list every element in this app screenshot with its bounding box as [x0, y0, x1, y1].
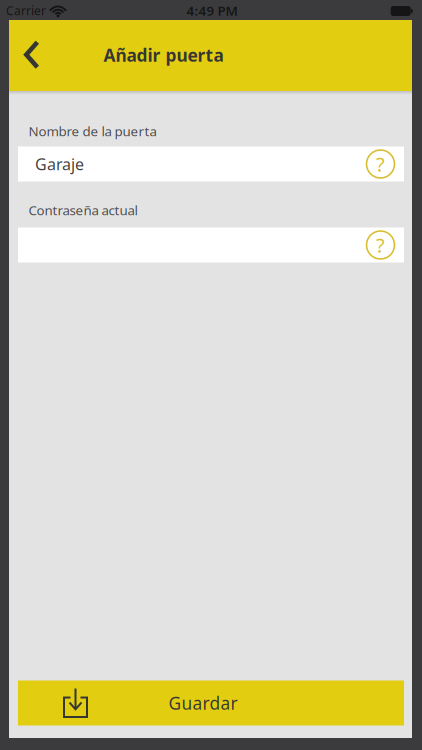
button[interactable]: Nombre de la puerta [18, 146, 404, 181]
staticText: 4:49 PM [186, 2, 237, 19]
staticText: ? [376, 151, 385, 177]
staticText: ? [376, 232, 385, 258]
button[interactable]: Back [9, 20, 53, 91]
staticText: Añadir puerta [103, 43, 223, 66]
staticText: Contraseña actual [28, 201, 137, 219]
staticText: Garaje [35, 153, 84, 175]
staticText: Guardar [168, 691, 237, 714]
button[interactable]: Ayuda: nombre de la puerta [366, 150, 394, 178]
button[interactable]: Guardar [18, 680, 404, 725]
staticText: Nombre de la puerta [28, 122, 156, 140]
button[interactable]: Ayuda: contraseña actual [366, 231, 394, 259]
button[interactable]: Contraseña actual [18, 227, 404, 262]
staticText: Carrier [6, 2, 46, 18]
